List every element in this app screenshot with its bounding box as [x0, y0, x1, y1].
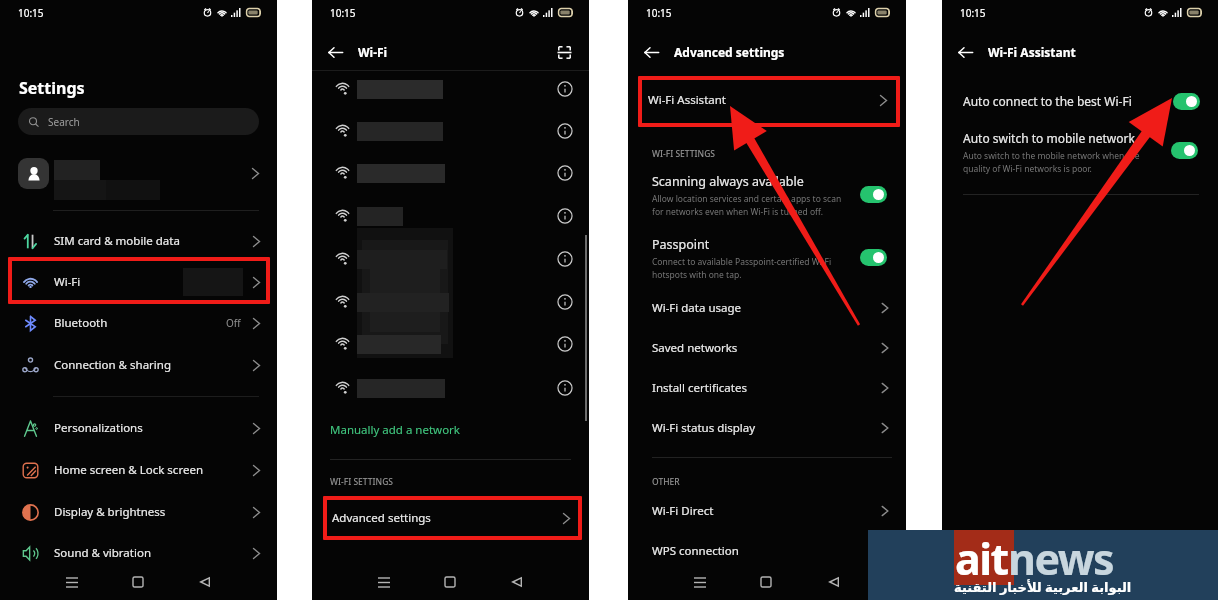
staticText: WI-FI SETTINGS — [330, 476, 394, 488]
staticText: Wi-Fi status display — [652, 420, 756, 436]
staticText: Wi-Fi — [54, 274, 81, 290]
staticText: SIM card & mobile data — [54, 233, 180, 249]
button[interactable]: Display & brightness — [0, 491, 277, 533]
button[interactable]: Network details — [312, 68, 589, 110]
button[interactable] — [0, 152, 277, 196]
button[interactable]: Passpoint — [628, 236, 906, 288]
button[interactable]: Scan QR code — [555, 43, 573, 61]
staticText: Wi-Fi Assistant — [648, 92, 726, 108]
staticText: Allow location services and certain apps… — [652, 193, 842, 218]
staticText: Off — [226, 316, 241, 330]
button[interactable]: Home — [753, 569, 779, 595]
staticText: news — [1008, 529, 1114, 588]
staticText: 10:15 — [18, 6, 44, 20]
button[interactable]: Network details — [312, 110, 589, 152]
staticText: Scanning always available — [652, 173, 804, 190]
staticText: Auto connect to the best Wi-Fi — [963, 93, 1173, 109]
button[interactable]: Auto connect to the best Wi-Fi — [942, 88, 1218, 114]
staticText: Install certificates — [652, 380, 747, 396]
button[interactable]: Network details — [312, 195, 589, 237]
button[interactable]: Auto switch to mobile network — [942, 128, 1218, 184]
button[interactable]: Network details — [557, 81, 573, 97]
button[interactable]: Recents — [371, 569, 397, 595]
staticText: Wi-Fi Direct — [652, 503, 714, 519]
button[interactable]: Recents — [59, 569, 85, 595]
staticText: Auto switch to the mobile network when t… — [963, 150, 1140, 175]
button[interactable]: Network details — [557, 123, 573, 139]
staticText: Advanced settings — [332, 510, 431, 526]
staticText: Sound & vibration — [54, 545, 151, 561]
button[interactable]: Back — [326, 43, 344, 61]
button[interactable]: Home — [437, 569, 463, 595]
button[interactable]: SIM card & mobile data — [0, 220, 277, 262]
staticText: Passpoint — [652, 236, 710, 253]
button[interactable]: Network details — [557, 251, 573, 267]
staticText: WPS connection — [652, 543, 739, 559]
staticText: Manually add a network — [330, 422, 460, 438]
button[interactable]: Scanning always available — [628, 173, 906, 225]
staticText: Wi-Fi data usage — [652, 300, 742, 316]
button[interactable]: Network details — [557, 294, 573, 310]
button[interactable]: Back — [504, 569, 530, 595]
button[interactable]: Back — [192, 569, 218, 595]
button[interactable]: Network details — [557, 165, 573, 181]
button[interactable]: Network details — [312, 238, 589, 280]
button[interactable]: Toggle — [860, 186, 887, 203]
button[interactable]: Network details — [312, 323, 589, 365]
staticText: Wi-Fi — [358, 44, 388, 60]
button[interactable]: Back — [956, 43, 974, 61]
button[interactable]: Network details — [312, 281, 589, 323]
button[interactable]: Advanced settings — [312, 496, 589, 540]
button[interactable]: Sound & vibration — [0, 532, 277, 574]
staticText: Settings — [19, 77, 85, 99]
button[interactable]: Wi-Fi status display — [628, 408, 906, 448]
button[interactable]: WPS connection — [628, 531, 906, 571]
staticText: WI-FI SETTINGS — [652, 148, 716, 160]
button[interactable]: Network details — [557, 336, 573, 352]
button[interactable]: Wi-Fi Direct — [628, 491, 906, 531]
staticText: Display & brightness — [54, 504, 166, 520]
staticText: 10:15 — [960, 6, 986, 20]
button[interactable]: Toggle — [860, 249, 887, 266]
staticText: OTHER — [652, 476, 680, 488]
staticText: Bluetooth — [54, 315, 108, 331]
button[interactable]: Wi-Fi Assistant — [628, 77, 906, 123]
staticText: Connection & sharing — [54, 357, 171, 373]
button[interactable]: Saved networks — [628, 328, 906, 368]
staticText: البوابة العربية للأخبار التقنية — [954, 578, 1132, 596]
staticText: Personalizations — [54, 420, 143, 436]
button[interactable]: Toggle — [1171, 142, 1198, 159]
button[interactable]: Network details — [557, 208, 573, 224]
button[interactable]: Wi-Fi — [0, 261, 277, 303]
button[interactable]: Home screen & Lock screen — [0, 449, 277, 491]
button[interactable]: Toggle — [1173, 93, 1200, 110]
button[interactable]: Personalizations — [0, 407, 277, 449]
button[interactable]: Install certificates — [628, 368, 906, 408]
staticText: 10:15 — [646, 6, 672, 20]
button[interactable]: Connection & sharing — [0, 344, 277, 386]
button[interactable]: Home — [125, 569, 151, 595]
button[interactable]: Search — [18, 108, 259, 135]
button[interactable]: Recents — [687, 569, 713, 595]
staticText: Search — [48, 115, 80, 129]
button[interactable]: Manually add a network — [312, 414, 589, 446]
button[interactable]: Back — [642, 43, 660, 61]
button[interactable]: Wi-Fi data usage — [628, 288, 906, 328]
button[interactable]: Back — [821, 569, 847, 595]
staticText: Connect to available Passpoint-certified… — [652, 256, 832, 281]
staticText: Saved networks — [652, 340, 738, 356]
button[interactable]: Network details — [312, 152, 589, 194]
staticText: 10:15 — [330, 6, 356, 20]
staticText: Wi-Fi Assistant — [988, 44, 1076, 60]
button[interactable]: Network details — [557, 380, 573, 396]
staticText: Auto switch to mobile network — [963, 130, 1135, 146]
staticText: Home screen & Lock screen — [54, 462, 203, 478]
button[interactable]: Bluetooth — [0, 302, 277, 344]
staticText: ait — [955, 529, 1008, 588]
staticText: Advanced settings — [674, 44, 785, 60]
button[interactable]: Network details — [312, 367, 589, 409]
